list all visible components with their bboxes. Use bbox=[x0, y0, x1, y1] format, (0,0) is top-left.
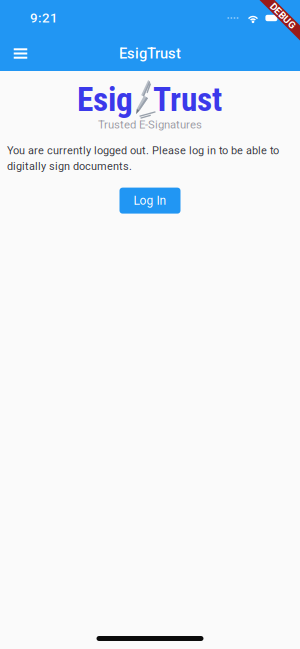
staticText: Esig bbox=[77, 80, 133, 119]
staticText: DEBUG bbox=[267, 10, 299, 22]
staticText: 9:21 bbox=[30, 10, 58, 26]
staticText: You are currently logged out. Please log… bbox=[7, 144, 279, 173]
button[interactable]: Menu bbox=[0, 36, 41, 71]
staticText: EsigTrust bbox=[119, 45, 181, 62]
staticText: Trust bbox=[153, 80, 222, 119]
staticText: Log In bbox=[133, 194, 166, 208]
staticText: Trusted E-Signatures bbox=[98, 118, 202, 131]
button[interactable]: Log In bbox=[119, 188, 180, 214]
